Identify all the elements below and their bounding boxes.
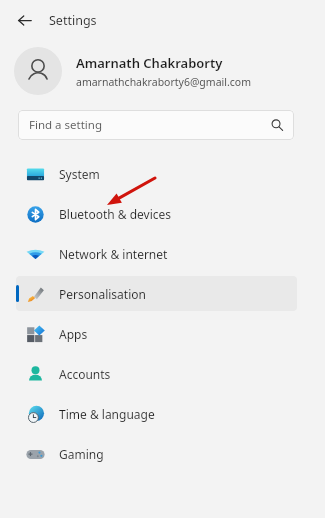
button[interactable]: Accounts (16, 356, 297, 391)
button[interactable]: Gaming (16, 436, 297, 471)
button[interactable]: Bluetooth & devices (16, 196, 297, 231)
button[interactable]: Apps (16, 316, 297, 351)
button[interactable]: Time & language (16, 396, 297, 431)
button[interactable]: Amarnath Chakraborty (14, 40, 325, 102)
staticText: Find a setting (29, 117, 102, 133)
staticText: Amarnath Chakraborty (76, 54, 223, 72)
staticText: Time & language (59, 406, 155, 422)
button[interactable]: System (16, 156, 297, 191)
staticText: Apps (59, 326, 88, 342)
button[interactable]: Network & internet (16, 236, 297, 271)
staticText: Settings (49, 12, 97, 29)
staticText: System (59, 166, 100, 182)
button[interactable]: Find a setting (18, 110, 294, 140)
staticText: Accounts (59, 366, 111, 382)
staticText: amarnathchakraborty6@gmail.com (76, 75, 251, 89)
button[interactable]: Back (10, 6, 38, 34)
staticText: Bluetooth & devices (59, 206, 172, 222)
staticText: Network & internet (59, 246, 168, 262)
staticText: Gaming (59, 446, 104, 462)
staticText: Personalisation (59, 286, 146, 302)
button[interactable]: Personalisation (16, 276, 297, 311)
